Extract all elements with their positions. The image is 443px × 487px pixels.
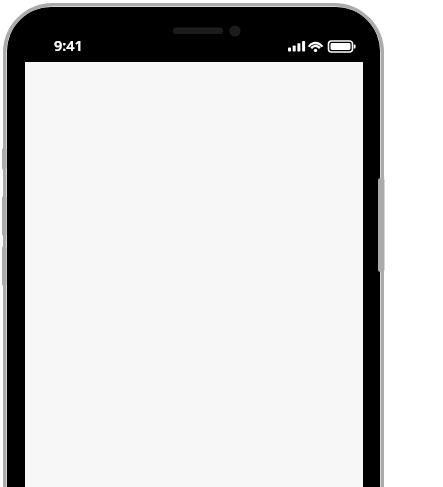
button[interactable]: Power [375, 178, 387, 272]
button[interactable]: Volume up [0, 196, 10, 236]
staticText: 9:41 [54, 35, 83, 53]
button[interactable]: 9:41 [54, 35, 100, 53]
button[interactable]: Ring silent switch [0, 148, 10, 170]
button[interactable]: Volume down [0, 246, 10, 286]
